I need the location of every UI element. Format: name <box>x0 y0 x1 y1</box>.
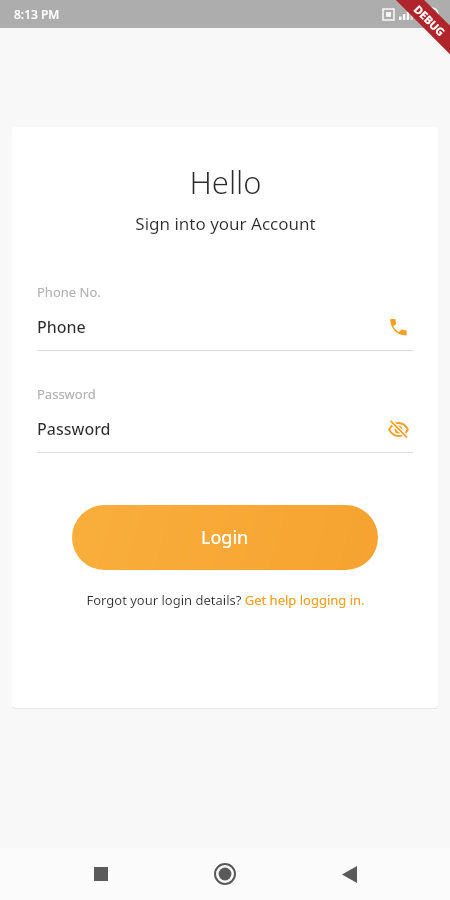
button[interactable]: Phone No. <box>37 283 413 351</box>
button[interactable]: Back <box>326 851 372 897</box>
button[interactable]: Toggle password visibility <box>383 414 413 444</box>
button[interactable]: Password <box>37 385 413 453</box>
button[interactable]: Forgot your login details? Get help logg… <box>12 591 438 609</box>
button[interactable]: Recents <box>78 851 124 897</box>
button[interactable]: Login <box>72 505 378 570</box>
staticText: DEBUG <box>411 2 448 39</box>
staticText: 8:13 PM <box>14 6 60 22</box>
staticText: Login <box>201 525 249 550</box>
staticText: Phone <box>37 316 383 338</box>
staticText: Password <box>37 385 96 403</box>
button[interactable]: Phone <box>383 312 413 342</box>
staticText: Forgot your login details? Get help logg… <box>86 591 365 609</box>
staticText: Password <box>37 418 383 440</box>
staticText: Hello <box>189 161 262 203</box>
button[interactable]: Home <box>202 851 248 897</box>
staticText: Phone No. <box>37 283 101 301</box>
staticText: Sign into your Account <box>135 212 316 235</box>
